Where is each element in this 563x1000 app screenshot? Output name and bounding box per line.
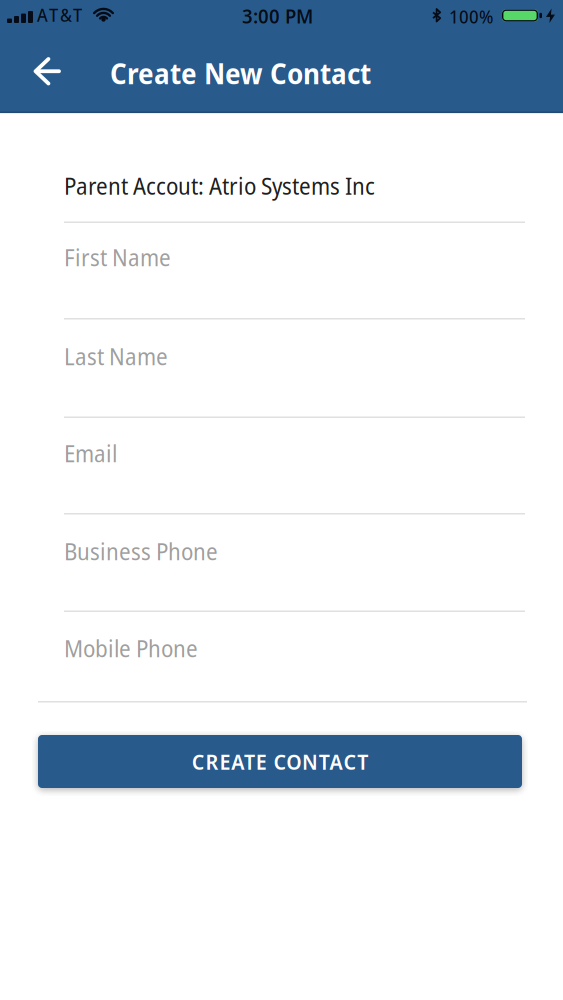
button[interactable]: First Name	[64, 223, 525, 319]
button[interactable]: Email	[64, 418, 525, 514]
staticText: Email	[64, 438, 117, 469]
button[interactable]: Mobile Phone	[64, 612, 525, 701]
staticText: AT&T	[37, 2, 82, 27]
staticText: First Name	[64, 242, 171, 273]
staticText: 3:00 PM	[242, 2, 313, 29]
staticText: Business Phone	[64, 536, 218, 567]
staticText: Create New Contact	[110, 54, 371, 92]
button[interactable]: Last Name	[64, 319, 525, 418]
staticText: Mobile Phone	[64, 633, 198, 664]
staticText: Parent Accout: Atrio Systems Inc	[64, 170, 375, 201]
staticText: 100%	[449, 4, 493, 29]
button[interactable]: Business Phone	[64, 514, 525, 612]
button[interactable]: CREATE CONTACT	[38, 735, 522, 788]
button[interactable]: Back	[23, 47, 71, 95]
staticText: CREATE CONTACT	[192, 747, 368, 776]
staticText: Last Name	[64, 341, 168, 372]
